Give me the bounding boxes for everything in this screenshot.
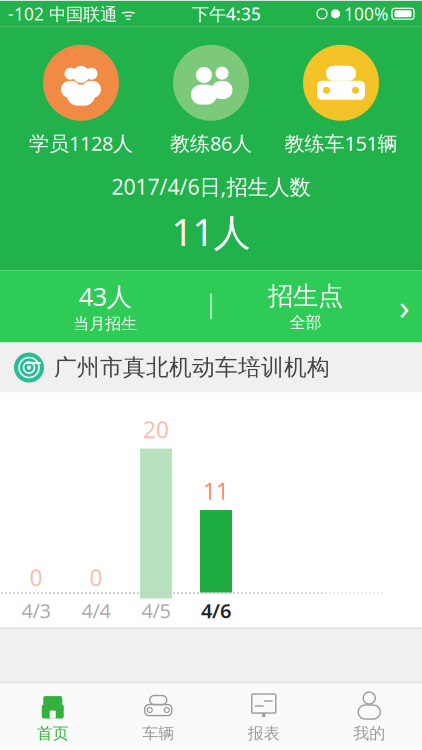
staticText: 11 <box>203 476 229 506</box>
staticText: 4/4 <box>81 597 110 624</box>
staticText: ᯤ <box>117 3 136 24</box>
staticText: 4/6 <box>201 597 231 624</box>
button[interactable]: 我的 <box>316 684 422 749</box>
button[interactable]: 招生点 <box>212 271 422 341</box>
staticText: 教练86人 <box>170 130 252 156</box>
button[interactable]: 首页 <box>0 684 105 749</box>
button[interactable]: 学员1128人 <box>16 45 146 156</box>
button[interactable]: 广州市真北机动车培训机构 <box>0 343 422 393</box>
staticText: 报表 <box>248 724 280 743</box>
staticText: 教练车151辆 <box>284 130 397 156</box>
button[interactable]: 报表 <box>211 684 316 749</box>
staticText: 广州市真北机动车培训机构 <box>54 354 330 381</box>
staticText: 4/5 <box>141 597 170 624</box>
button[interactable]: 43人 <box>0 270 210 343</box>
staticText: 车辆 <box>142 724 174 743</box>
staticText: 11人 <box>171 207 250 256</box>
staticText: 首页 <box>37 724 69 743</box>
staticText: -102 中国联通 <box>8 2 117 25</box>
staticText: 0 <box>89 562 102 593</box>
staticText: 我的 <box>353 724 385 743</box>
staticText: 招生点 <box>268 280 343 312</box>
staticText: 100% <box>344 2 388 25</box>
staticText: 学员1128人 <box>29 130 133 156</box>
staticText: 4/3 <box>21 597 50 624</box>
staticText: › <box>399 283 410 329</box>
staticText: 下午4:35 <box>192 2 261 25</box>
button[interactable]: 教练车151辆 <box>276 45 406 156</box>
staticText: 当月招生 <box>73 314 137 334</box>
button[interactable]: 车辆 <box>105 684 211 749</box>
staticText: 2017/4/6日,招生人数 <box>111 172 310 201</box>
button[interactable]: 教练86人 <box>146 45 276 156</box>
staticText: 20 <box>143 414 169 445</box>
staticText: 0 <box>29 562 42 593</box>
staticText: 43人 <box>79 279 132 313</box>
staticText: 全部 <box>289 313 321 332</box>
